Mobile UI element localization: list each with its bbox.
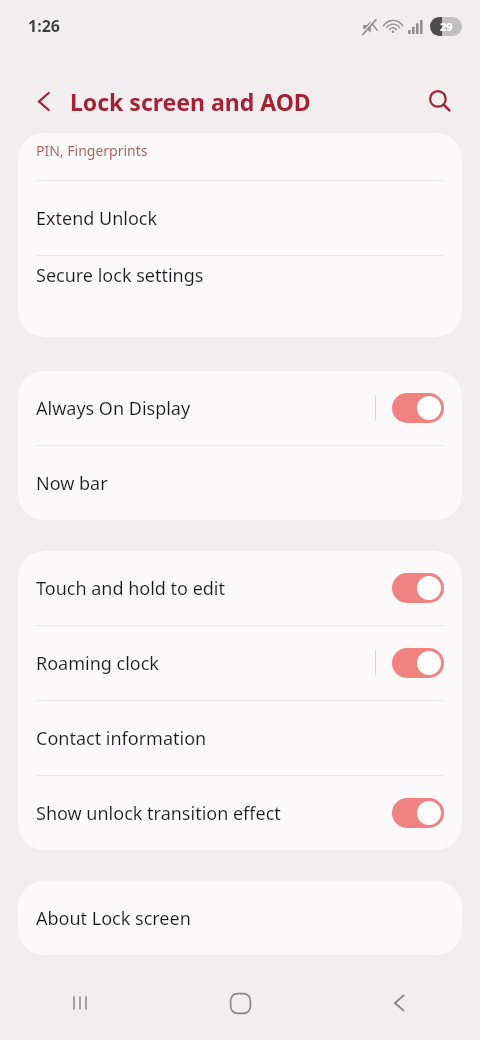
button[interactable]: Back bbox=[320, 966, 480, 1040]
button[interactable]: Roaming clock bbox=[18, 626, 462, 700]
button[interactable]: Switch on bbox=[392, 393, 444, 423]
staticText: Extend Unlock bbox=[36, 206, 158, 231]
button[interactable]: Contact information bbox=[18, 701, 462, 775]
button[interactable]: Show unlock transition effect bbox=[18, 776, 462, 850]
staticText: Lock screen and AOD bbox=[70, 86, 420, 117]
staticText: PIN, Fingerprints bbox=[36, 141, 148, 160]
button[interactable]: Secure lock settings bbox=[18, 256, 462, 294]
button[interactable]: Search bbox=[420, 81, 460, 121]
button[interactable]: Now bar bbox=[18, 446, 462, 520]
staticText: Roaming clock bbox=[36, 651, 159, 676]
staticText: Secure lock settings bbox=[36, 263, 204, 288]
staticText: About Lock screen bbox=[36, 906, 191, 931]
staticText: Now bar bbox=[36, 471, 108, 496]
staticText: 29 bbox=[440, 19, 453, 34]
button[interactable]: Switch on bbox=[392, 648, 444, 678]
button[interactable]: Switch on bbox=[392, 573, 444, 603]
button[interactable]: Extend Unlock bbox=[18, 181, 462, 255]
button[interactable]: Always On Display bbox=[18, 371, 462, 445]
button[interactable]: About Lock screen bbox=[18, 881, 462, 955]
staticText: Show unlock transition effect bbox=[36, 801, 281, 826]
button[interactable]: Recent apps bbox=[0, 966, 160, 1040]
staticText: 1:26 bbox=[28, 15, 60, 37]
staticText: Contact information bbox=[36, 726, 207, 751]
button[interactable]: Navigate up bbox=[27, 84, 61, 118]
button[interactable]: Touch and hold to edit bbox=[18, 551, 462, 625]
staticText: Always On Display bbox=[36, 396, 191, 421]
button[interactable]: Screen lock and biometrics bbox=[18, 133, 462, 180]
button[interactable]: Switch on bbox=[392, 798, 444, 828]
button[interactable]: Home bbox=[160, 966, 320, 1040]
staticText: Touch and hold to edit bbox=[36, 576, 226, 601]
